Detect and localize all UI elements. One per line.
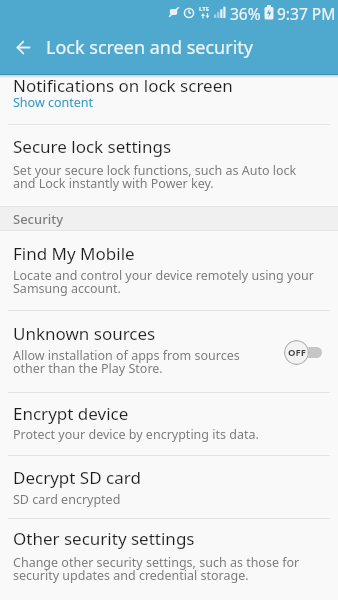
staticText: Change other security settings, such as … xyxy=(13,554,300,584)
staticText: Other security settings xyxy=(13,527,195,550)
staticText: Locate and control your device remotely … xyxy=(13,267,314,297)
button[interactable]: Unknown sources xyxy=(0,311,338,392)
button[interactable]: Find My Mobile xyxy=(0,231,338,310)
staticText: SD card encrypted xyxy=(13,491,121,508)
button[interactable]: Other security settings xyxy=(0,519,338,600)
staticText: Allow installation of apps from sources … xyxy=(13,347,240,377)
staticText: Secure lock settings xyxy=(13,135,172,158)
button[interactable]: Secure lock settings xyxy=(0,125,338,206)
staticText: Find My Mobile xyxy=(13,242,135,265)
staticText: Show content xyxy=(13,94,94,111)
staticText: Encrypt device xyxy=(13,402,129,425)
button[interactable]: Encrypt device xyxy=(0,393,338,455)
staticText: 9:37 PM xyxy=(277,3,336,21)
staticText: Protect your device by encrypting its da… xyxy=(13,426,259,443)
staticText: Lock screen and security xyxy=(46,35,253,60)
staticText: 36% xyxy=(230,3,261,21)
staticText: OFF xyxy=(288,346,306,359)
button[interactable] xyxy=(0,24,46,70)
button[interactable]: Notifications on lock screen xyxy=(0,75,338,124)
staticText: LTE xyxy=(199,5,210,13)
staticText: Unknown sources xyxy=(13,322,156,345)
button[interactable]: OFF xyxy=(284,339,322,365)
button[interactable]: Decrypt SD card xyxy=(0,456,338,518)
staticText: Security xyxy=(13,210,63,228)
staticText: Notifications on lock screen xyxy=(13,74,233,97)
staticText: Set your secure lock functions, such as … xyxy=(13,162,297,192)
staticText: Decrypt SD card xyxy=(13,466,141,489)
